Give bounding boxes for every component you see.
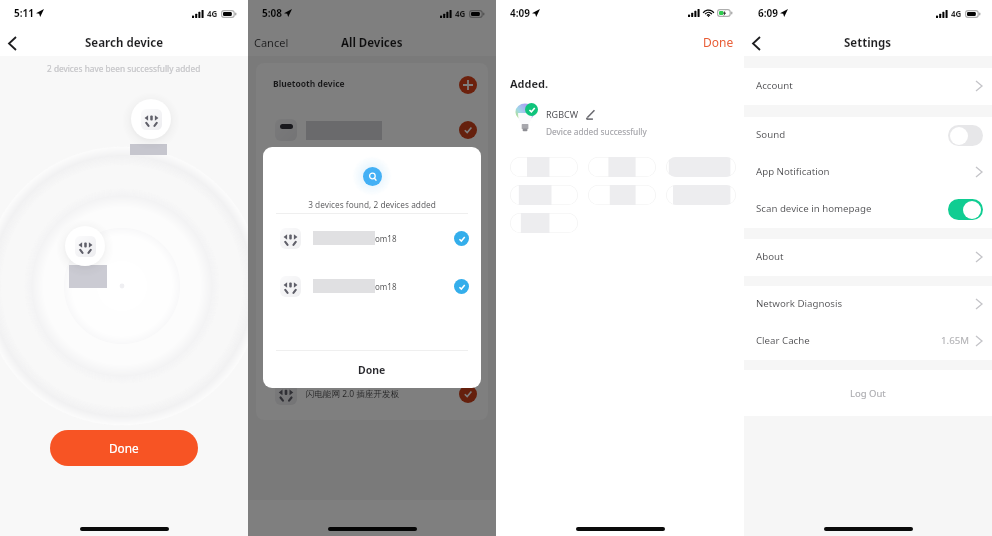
staticText: 1.65M [941, 334, 970, 347]
staticText: 4:09 [510, 6, 530, 20]
button[interactable]: Add device [459, 76, 477, 94]
staticText: 2 devices have been successfully added [47, 63, 201, 74]
button[interactable]: Cancel [254, 35, 289, 50]
staticText: 闪电能网 2.0 插座开发板 [306, 388, 399, 400]
button[interactable]: Done [263, 351, 481, 388]
staticText: Bluetooth device [273, 78, 345, 90]
staticText: About [756, 250, 784, 263]
staticText: Network Diagnosis [756, 297, 843, 310]
button[interactable] [275, 107, 477, 153]
button[interactable]: Account [744, 68, 992, 105]
staticText: 3 devices found, 2 devices added [263, 199, 481, 210]
button[interactable] [666, 185, 736, 205]
staticText: Account [756, 79, 793, 92]
staticText: 5:11 [14, 6, 34, 20]
staticText: om18 [375, 233, 397, 244]
button[interactable]: om18 [280, 214, 469, 262]
staticText: RGBCW [546, 108, 579, 120]
staticText: 4G [207, 8, 218, 19]
staticText: All Devices [341, 35, 403, 51]
staticText: App Notification [756, 165, 830, 178]
staticText: Added. [510, 76, 549, 91]
button[interactable]: Back [745, 32, 767, 54]
button[interactable]: Back [1, 32, 23, 54]
staticText: Search device [85, 35, 164, 51]
button[interactable]: Rename device [585, 109, 596, 120]
button[interactable] [666, 157, 736, 177]
staticText: Log Out [850, 387, 886, 400]
staticText: om18 [375, 281, 397, 292]
button[interactable]: Scan device in homepage [744, 191, 992, 228]
button[interactable]: Sound [744, 117, 992, 154]
staticText: 6:09 [758, 6, 778, 20]
button[interactable] [510, 157, 578, 177]
button[interactable]: About [744, 239, 992, 276]
button[interactable] [588, 185, 656, 205]
staticText: Clear Cache [756, 334, 810, 347]
staticText: Settings [844, 35, 892, 51]
button[interactable]: om18 [280, 262, 469, 310]
staticText: Device added successfully [546, 126, 647, 137]
button[interactable]: Done [703, 34, 734, 50]
button[interactable] [588, 157, 656, 177]
staticText: 5:08 [262, 6, 282, 20]
button[interactable] [510, 213, 578, 233]
button[interactable]: Network Diagnosis [744, 286, 992, 323]
button[interactable]: 闪电能网 2.0 插座开发板 [275, 371, 477, 417]
button[interactable] [510, 185, 578, 205]
staticText: 4G [455, 8, 466, 19]
button[interactable]: Clear Cache [744, 323, 992, 360]
button[interactable]: App Notification [744, 154, 992, 191]
staticText: Sound [756, 128, 786, 141]
staticText: 4G [951, 8, 962, 19]
staticText: Scan device in homepage [756, 202, 872, 215]
staticText: Done [109, 440, 139, 456]
button[interactable]: Done [50, 430, 198, 466]
button[interactable]: Log Out [744, 370, 992, 416]
staticText: Done [358, 363, 386, 377]
